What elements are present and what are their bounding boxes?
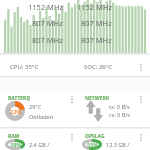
staticText: RAM [8, 133, 20, 140]
button[interactable]: OPSLAG [77, 129, 150, 150]
button[interactable]: More options [136, 60, 146, 74]
staticText: 12.3 GB / [106, 141, 130, 148]
button[interactable]: RAM [0, 129, 77, 150]
staticText: 807 MHz [32, 18, 63, 28]
staticText: 1152 MHz [28, 2, 63, 12]
staticText: 38% [10, 141, 21, 148]
staticText: 2.4 GB / [29, 141, 50, 148]
staticText: CPU: 35°C [10, 63, 39, 71]
staticText: BATTERIJ [8, 95, 30, 102]
button[interactable]: NETWERK [77, 91, 150, 127]
staticText: SOC: 26°C [84, 63, 113, 71]
staticText: 1152 MHz [77, 2, 112, 12]
staticText: 807 MHz [81, 35, 112, 45]
staticText: tx: 0 B/s [109, 103, 130, 110]
button[interactable]: More options [67, 92, 77, 106]
staticText: rx: 0 B/s [109, 111, 130, 118]
button[interactable]: BATTERIJ [0, 91, 77, 127]
staticText: 807 MHz [32, 35, 63, 45]
button[interactable]: More options [136, 130, 146, 144]
staticText: Ontladen [29, 113, 54, 120]
button[interactable]: CPU: 35°C [0, 57, 150, 76]
staticText: 55% [87, 141, 98, 148]
staticText: NETWERK [85, 95, 109, 102]
button[interactable]: 1152 MHz [0, 0, 150, 53]
staticText: 29°C [29, 103, 42, 110]
button[interactable]: More options [136, 92, 146, 106]
staticText: 807 MHz [81, 18, 112, 28]
staticText: OPSLAG [85, 133, 105, 140]
staticText: 22% [10, 108, 21, 115]
button[interactable]: More options [67, 130, 77, 144]
